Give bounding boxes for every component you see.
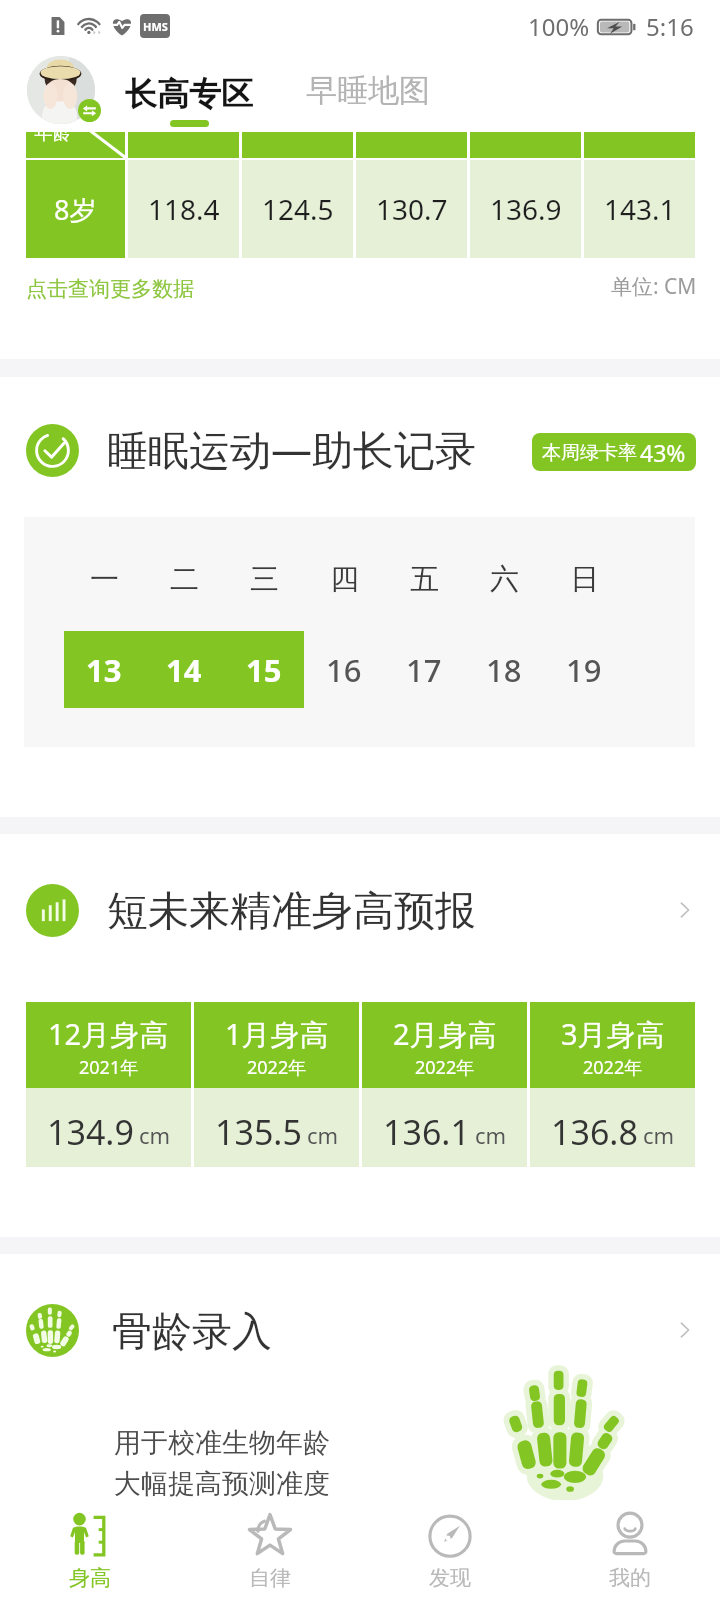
- button[interactable]: 早睡地图: [306, 71, 430, 110]
- staticText: 我的: [609, 1565, 651, 1591]
- staticText: 1月身高: [225, 1014, 329, 1054]
- staticText: 骨龄录入: [112, 1306, 272, 1356]
- button[interactable]: 身高: [0, 1502, 180, 1600]
- staticText: 年龄: [34, 121, 72, 145]
- staticText: 130.7: [376, 190, 448, 228]
- staticText: 15: [246, 649, 282, 691]
- button[interactable]: 长高专区: [125, 74, 253, 127]
- staticText: 16: [326, 649, 362, 691]
- staticText: 100%: [528, 10, 590, 43]
- staticText: 134.9: [47, 1109, 134, 1155]
- staticText: 身高: [69, 1565, 111, 1591]
- staticText: 14: [166, 649, 202, 691]
- staticText: HMS: [143, 19, 168, 34]
- staticText: 17: [406, 649, 442, 691]
- staticText: 用于校准生物年龄: [114, 1426, 330, 1460]
- staticText: 2022年: [583, 1055, 643, 1080]
- staticText: 136.1: [383, 1109, 470, 1155]
- staticText: 单位: CM: [611, 272, 697, 301]
- staticText: cm: [139, 1120, 171, 1150]
- staticText: 8岁: [54, 191, 97, 228]
- staticText: 5:16: [646, 10, 694, 43]
- staticText: 六: [490, 561, 519, 598]
- staticText: 日: [570, 561, 599, 598]
- staticText: 点击查询更多数据: [26, 276, 194, 302]
- staticText: 18: [486, 649, 522, 691]
- staticText: 13: [86, 649, 122, 691]
- staticText: cm: [307, 1120, 339, 1150]
- staticText: 大幅提高预测准度: [114, 1467, 330, 1501]
- staticText: 136.8: [551, 1109, 638, 1155]
- staticText: cm: [643, 1120, 675, 1150]
- staticText: 2021年: [79, 1055, 139, 1080]
- staticText: 2022年: [247, 1055, 307, 1080]
- button[interactable]: 本周绿卡率: [532, 433, 696, 471]
- staticText: 三: [250, 561, 279, 598]
- staticText: 二: [170, 561, 199, 598]
- button[interactable]: Profile avatar: [27, 56, 95, 124]
- staticText: 43%: [640, 437, 686, 468]
- staticText: 2月身高: [393, 1014, 497, 1054]
- staticText: 早睡地图: [306, 71, 430, 110]
- staticText: 长高专区: [125, 74, 253, 114]
- staticText: 睡眠运动—助长记录: [107, 421, 476, 477]
- staticText: 143.1: [604, 190, 676, 228]
- staticText: 自律: [249, 1565, 291, 1591]
- button[interactable]: 点击查询更多数据: [26, 276, 194, 302]
- staticText: 118.4: [148, 190, 220, 228]
- staticText: 本周绿卡率: [542, 441, 637, 465]
- staticText: 136.9: [490, 190, 562, 228]
- staticText: 135.5: [215, 1109, 302, 1155]
- staticText: 五: [410, 561, 439, 598]
- staticText: cm: [475, 1120, 507, 1150]
- staticText: 四: [330, 561, 359, 598]
- staticText: 19: [566, 649, 602, 691]
- staticText: 一: [90, 561, 119, 598]
- staticText: 2022年: [415, 1055, 475, 1080]
- staticText: 3月身高: [561, 1014, 665, 1054]
- button[interactable]: 自律: [180, 1502, 360, 1600]
- button[interactable]: 我的: [540, 1502, 720, 1600]
- staticText: 124.5: [262, 190, 334, 228]
- staticText: 发现: [429, 1565, 471, 1591]
- button[interactable]: 发现: [360, 1502, 540, 1600]
- staticText: 12月身高: [48, 1014, 169, 1054]
- button[interactable]: [0, 880, 720, 940]
- button[interactable]: [0, 1300, 720, 1360]
- staticText: 短未来精准身高预报: [107, 886, 476, 938]
